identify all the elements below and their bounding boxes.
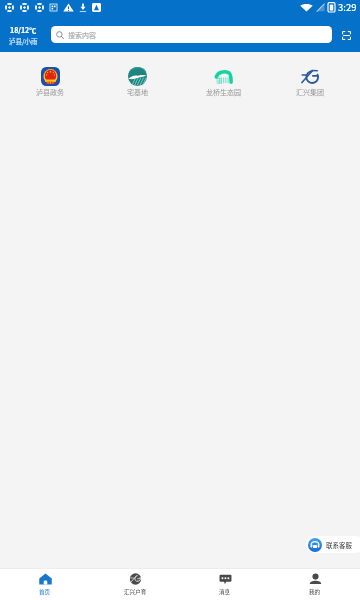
- button[interactable]: 龙桥生态园: [187, 52, 259, 97]
- staticText: 泸县政务: [36, 87, 64, 97]
- staticText: 3:29: [338, 0, 357, 14]
- staticText: 联系客服: [326, 540, 352, 549]
- button[interactable]: 搜索内容: [51, 26, 332, 43]
- button[interactable]: 我的: [270, 569, 360, 600]
- staticText: 汇兴户育: [124, 588, 147, 596]
- button[interactable]: 首页: [0, 569, 90, 600]
- button[interactable]: 宅基地: [101, 52, 173, 97]
- button[interactable]: 扫一扫: [337, 26, 355, 44]
- staticText: 汇兴集团: [296, 87, 324, 97]
- staticText: 我的: [309, 588, 321, 596]
- staticText: 搜索内容: [68, 30, 96, 40]
- button[interactable]: 联系客服: [306, 536, 360, 553]
- staticText: 龙桥生态园: [206, 87, 241, 97]
- staticText: 18/12℃: [10, 25, 37, 35]
- staticText: 首页: [39, 588, 51, 596]
- staticText: 宅基地: [127, 87, 148, 97]
- button[interactable]: 消息: [180, 569, 270, 600]
- button[interactable]: 汇兴户育: [90, 569, 180, 600]
- button[interactable]: 汇兴集团: [274, 52, 346, 97]
- button[interactable]: 泸县政务: [14, 52, 86, 97]
- staticText: 泸县/小雨: [9, 36, 38, 45]
- staticText: 消息: [219, 588, 231, 596]
